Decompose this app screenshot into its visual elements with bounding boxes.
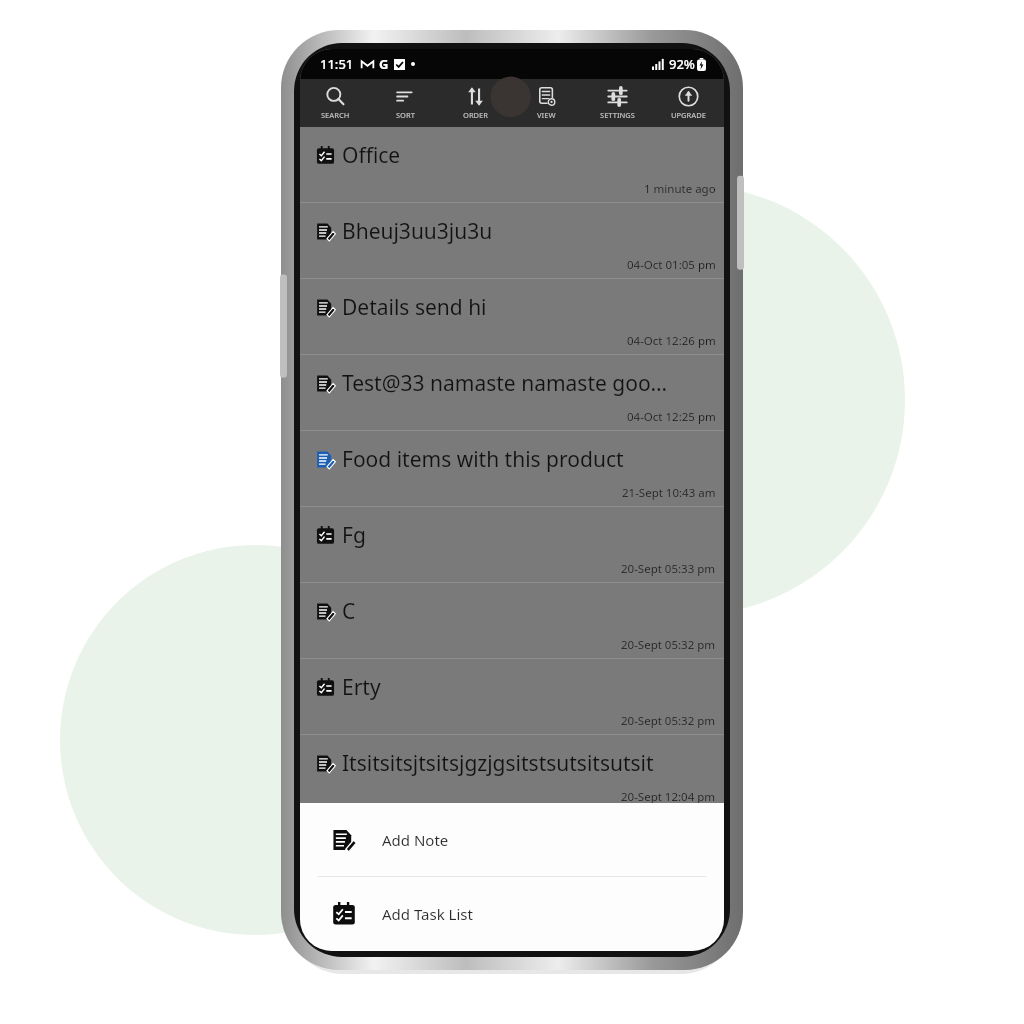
staticText: C [342,597,356,626]
staticText: G [379,55,389,73]
button[interactable]: Test@33 namaste namaste goo… [300,355,724,430]
staticText: Itsitsitsjtsitsjgzjgsitstsutsitsutsit [342,749,654,778]
button[interactable]: Details send hi [300,279,724,354]
staticText: 20-Sept 12:04 pm [621,789,716,805]
button[interactable]: Add Note [300,803,724,876]
staticText: 04-Oct 12:25 pm [627,409,716,425]
button[interactable]: Bheuj3uu3ju3u [300,203,724,278]
button[interactable]: Office [300,127,724,202]
staticText: 1 minute ago [644,181,716,197]
button[interactable]: Fg [300,507,724,582]
staticText: 04-Oct 01:05 pm [627,257,716,273]
staticText: Fg [342,521,366,550]
button[interactable]: Add Task List [300,877,724,950]
staticText: ORDER [463,110,489,120]
staticText: 11:51 [320,55,354,73]
button[interactable]: SEARCH [300,79,370,127]
button[interactable]: C [300,583,724,658]
button[interactable]: ORDER [440,79,511,127]
staticText: SEARCH [321,110,350,120]
button[interactable]: UPGRADE [653,79,724,127]
staticText: 92% [669,55,695,73]
button[interactable]: SETTINGS [582,79,653,127]
staticText: Details send hi [342,293,487,322]
button[interactable]: Itsitsitsjtsitsjgzjgsitstsutsitsutsit [300,735,724,810]
staticText: Office [342,141,401,170]
staticText: Test@33 namaste namaste goo… [342,369,668,398]
button[interactable]: SORT [370,79,440,127]
staticText: 20-Sept 05:32 pm [621,713,716,729]
staticText: 04-Oct 12:26 pm [627,333,716,349]
button[interactable]: Erty [300,659,724,734]
staticText: Bheuj3uu3ju3u [342,217,493,246]
staticText: 20-Sept 05:32 pm [621,637,716,653]
staticText: UPGRADE [671,110,706,120]
staticText: 20-Sept 05:33 pm [621,561,716,577]
staticText: 21-Sept 10:43 am [622,485,716,501]
staticText: VIEW [537,110,556,120]
staticText: Food items with this product [342,445,624,474]
button[interactable]: Food items with this product [300,431,724,506]
staticText: SORT [396,110,415,120]
staticText: Add Note [382,830,449,850]
button[interactable]: VIEW [511,79,582,127]
staticText: Erty [342,673,381,702]
staticText: SETTINGS [600,110,635,120]
staticText: Add Task List [382,904,473,924]
